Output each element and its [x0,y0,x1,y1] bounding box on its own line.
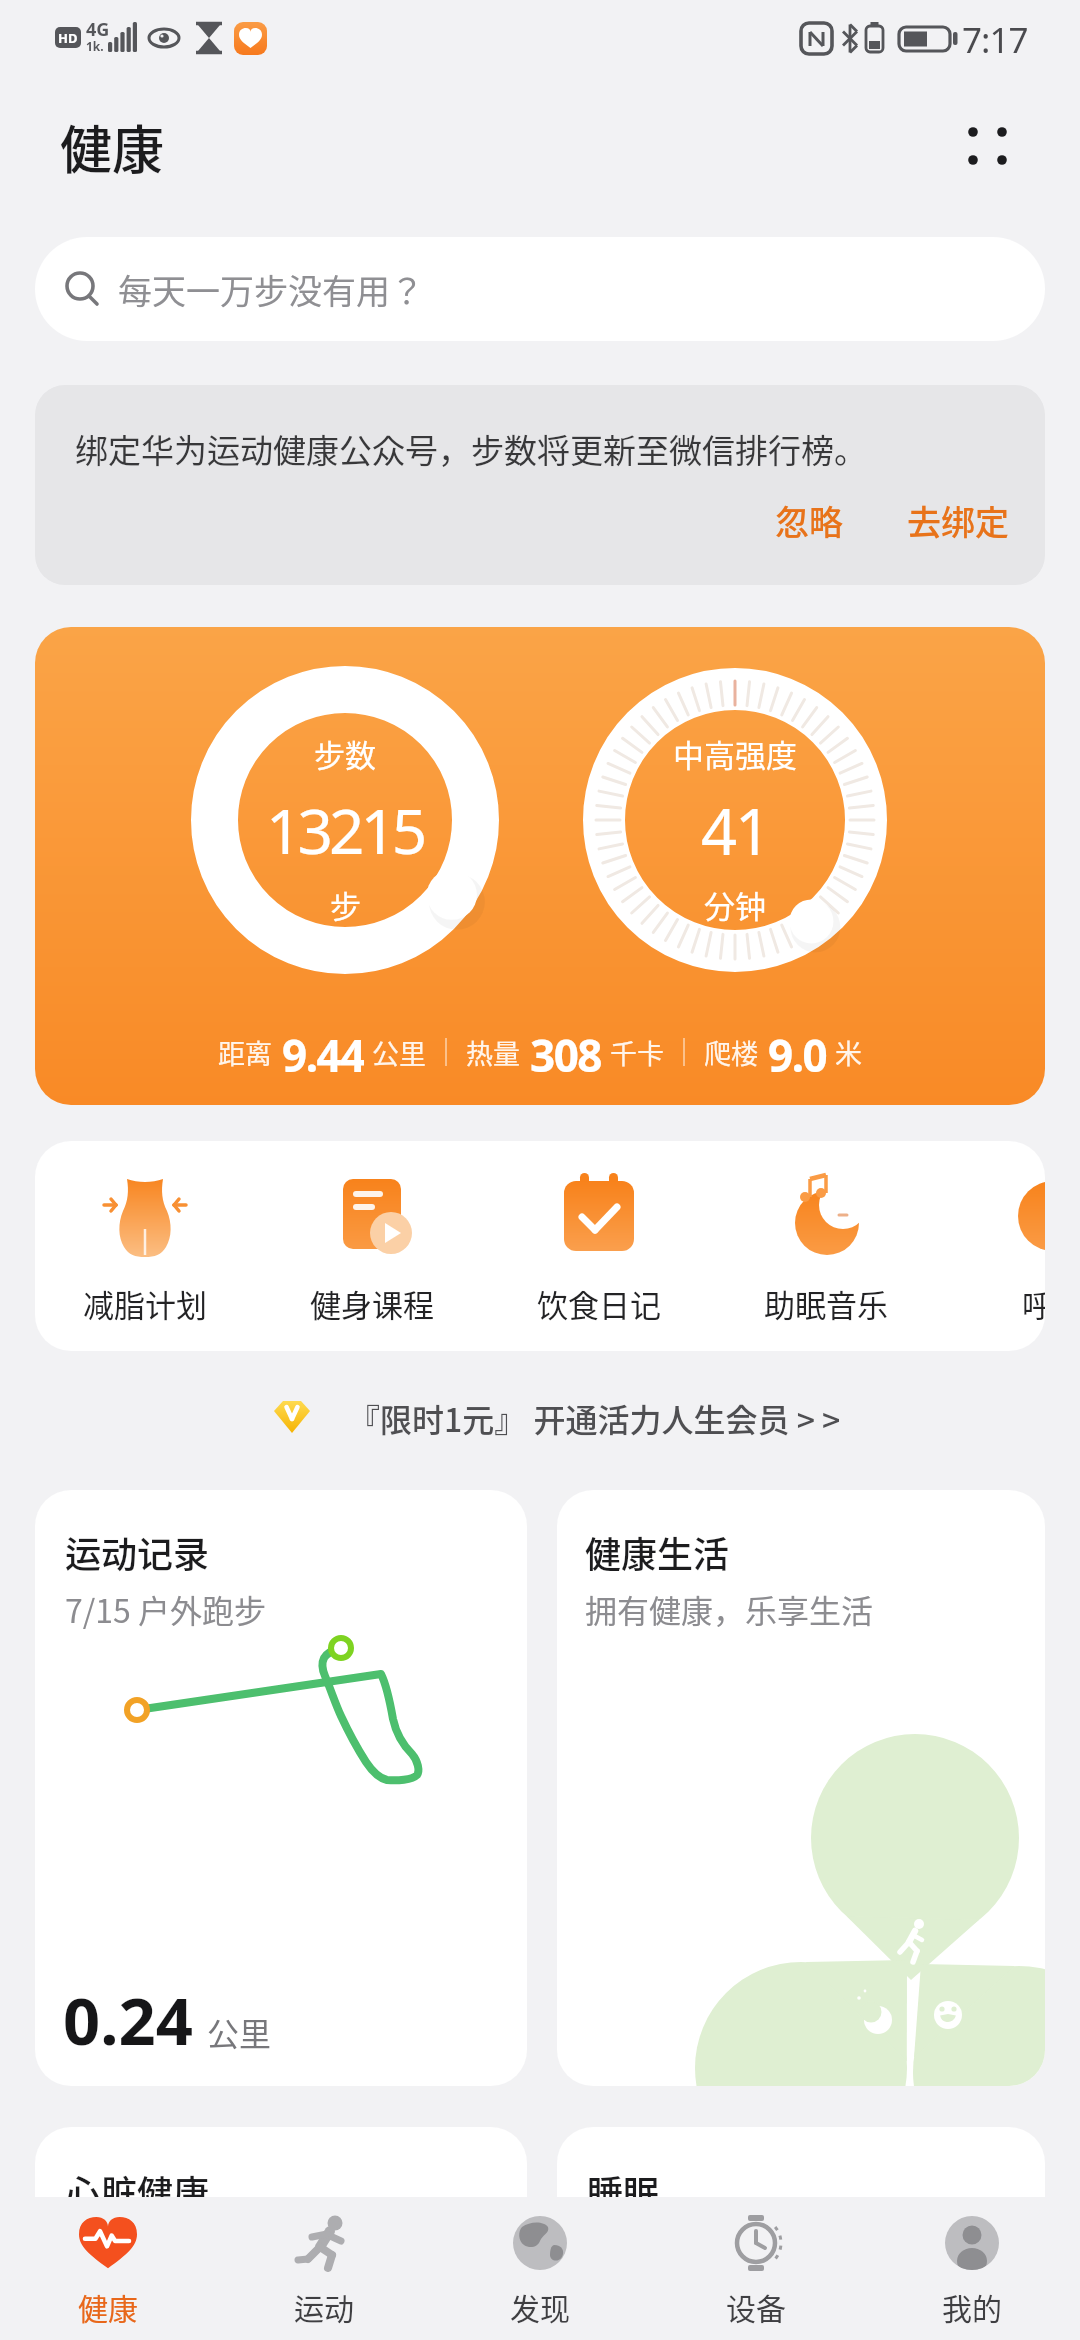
button[interactable]: 饮食日记 [494,1141,704,1351]
staticText: 4G [86,17,110,42]
staticText: 公里 [372,1033,426,1072]
staticText: 拥有健康，乐享生活 [585,1586,874,1632]
staticText: 步 [330,882,361,926]
staticText: 忽略 [775,496,843,545]
staticText: HD [58,29,78,47]
staticText: 睡眠 [587,2165,660,2217]
staticText: 9.44 [282,1025,364,1079]
staticText: 健康 [78,2285,138,2328]
button[interactable]: 运动 [216,2197,432,2340]
staticText: 呼吸 [1022,1281,1045,1326]
button[interactable]: 健身课程 [267,1141,477,1351]
staticText: 『限时1元』 开通活力人生会员 > > [348,1395,841,1441]
staticText: 1k. [86,38,104,54]
staticText: 7/15 户外跑步 [65,1586,266,1632]
staticText: 7:17 [962,16,1028,60]
button[interactable]: 健康 [0,2197,216,2340]
staticText: 13215 [266,788,424,868]
button[interactable] [952,111,1022,181]
button[interactable]: 呼吸 [948,1141,1045,1351]
staticText: 发现 [510,2285,570,2328]
button[interactable]: 去绑定 [895,488,1021,553]
staticText: 41 [701,788,770,868]
button[interactable]: 忽略 [763,488,855,553]
button[interactable]: 发现 [432,2197,648,2340]
button[interactable]: 睡眠 [557,2127,1045,2340]
button[interactable]: 设备 [648,2197,864,2340]
staticText: 步数 [314,731,376,775]
button[interactable]: 步数 [35,627,1045,1105]
staticText: 运动 [294,2285,354,2328]
staticText: 中高强度 [673,731,797,775]
staticText: 绑定华为运动健康公众号，步数将更新至微信排行榜。 [75,425,867,473]
staticText: 去绑定 [907,496,1009,545]
staticText: 健康生活 [585,1526,730,1578]
staticText: 助眠音乐 [764,1281,888,1326]
staticText: 我的 [942,2285,1002,2328]
button[interactable]: 健康生活 [557,1490,1045,2086]
staticText: 运动记录 [65,1526,210,1578]
staticText: 设备 [726,2285,786,2328]
staticText: 健康 [60,109,165,184]
staticText: 9.0 [768,1025,827,1079]
staticText: 每天一万步没有用？ [118,265,424,314]
staticText: 减脂计划 [83,1281,207,1326]
staticText: 热量 [466,1033,520,1072]
staticText: 308 [530,1025,602,1079]
button[interactable]: 每天一万步没有用？ [35,237,1045,341]
button[interactable]: 助眠音乐 [721,1141,931,1351]
staticText: 饮食日记 [537,1281,661,1326]
staticText: 米 [835,1033,862,1072]
button[interactable]: 我的 [864,2197,1080,2340]
button[interactable]: 『限时1元』 开通活力人生会员 > > [266,1390,886,1446]
staticText: 公里 [207,2009,272,2055]
staticText: 距离 [218,1033,272,1072]
staticText: 千卡 [610,1033,664,1072]
staticText: 分钟 [704,882,766,926]
button[interactable]: 运动记录 [35,1490,527,2086]
button[interactable]: 心脏健康 [35,2127,527,2340]
staticText: 健身课程 [310,1281,434,1326]
staticText: 爬楼 [704,1033,758,1072]
staticText: 0.24 [63,1976,193,2065]
button[interactable]: 减脂计划 [40,1141,250,1351]
staticText: 心脏健康 [65,2165,210,2217]
